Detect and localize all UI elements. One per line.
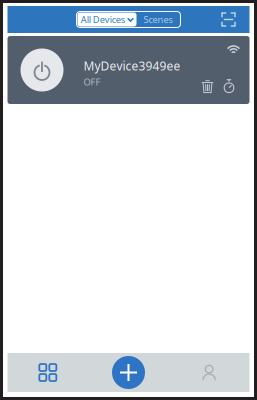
button[interactable]: MyDevice3949ee bbox=[7, 36, 249, 104]
staticText: MyDevice3949ee bbox=[83, 58, 180, 74]
button[interactable]: Delete device bbox=[201, 79, 213, 93]
button[interactable]: Scenes bbox=[136, 12, 179, 26]
staticText: All Devices bbox=[81, 13, 125, 26]
button[interactable]: Scan bbox=[215, 8, 241, 30]
button[interactable]: Account bbox=[169, 353, 249, 392]
staticText: Scenes bbox=[143, 13, 172, 26]
button[interactable]: Devices bbox=[7, 353, 88, 392]
button[interactable]: All Devices bbox=[77, 12, 136, 26]
button[interactable]: Add device bbox=[88, 353, 169, 392]
staticText: OFF bbox=[83, 76, 100, 88]
button[interactable]: Schedule bbox=[222, 79, 235, 93]
